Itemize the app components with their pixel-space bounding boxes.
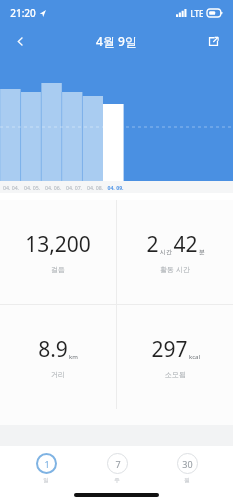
button[interactable]: 297 — [117, 305, 233, 409]
staticText: 04. 06. — [45, 184, 61, 191]
staticText: 42 — [173, 230, 198, 259]
button[interactable]: 13,200 — [0, 200, 116, 304]
staticText: 시간 — [160, 248, 172, 256]
staticText: 04. 04. — [3, 184, 19, 191]
staticText: 2 — [146, 230, 159, 259]
button[interactable]: 30 — [163, 453, 211, 484]
staticText: 30 — [182, 458, 193, 470]
staticText: 주 — [114, 477, 120, 484]
staticText: kcal — [189, 353, 200, 361]
staticText: 04. 09. — [107, 184, 124, 191]
staticText: LTE — [190, 8, 204, 19]
staticText: 활동 시간 — [160, 265, 190, 275]
staticText: 1 — [44, 458, 50, 470]
staticText: 걸음 — [51, 265, 65, 274]
staticText: 21:20 — [10, 6, 36, 20]
staticText: 7 — [115, 458, 121, 470]
staticText: 소모됨 — [165, 370, 186, 379]
staticText: 04. 08. — [87, 184, 103, 191]
staticText: 월 — [184, 477, 190, 484]
staticText: 8.9 — [38, 335, 68, 364]
staticText: 4월 9일 — [96, 33, 137, 49]
staticText: 297 — [151, 335, 188, 364]
staticText: 04. 05. — [24, 184, 40, 191]
staticText: 일 — [43, 477, 49, 484]
button[interactable]: Share — [199, 27, 227, 55]
button[interactable]: 2 — [117, 200, 233, 304]
button[interactable]: 1 — [22, 453, 70, 484]
staticText: 분 — [199, 248, 205, 256]
button[interactable]: Back — [5, 26, 35, 56]
staticText: 13,200 — [25, 230, 91, 259]
staticText: 거리 — [51, 370, 65, 379]
staticText: 04. 07. — [66, 184, 82, 191]
button[interactable]: 8.9 — [0, 305, 116, 409]
button[interactable]: 7 — [93, 453, 141, 484]
staticText: km — [69, 353, 78, 361]
